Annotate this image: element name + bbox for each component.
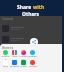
staticText: Share to: [2, 46, 14, 50]
staticText: with: [33, 4, 45, 11]
button[interactable]: Sheets: [19, 60, 28, 68]
button[interactable]: Instagram: [19, 50, 28, 61]
staticText: Instagram: [19, 55, 28, 61]
staticText: Facebook: [10, 65, 19, 68]
button[interactable]: Drive: [1, 60, 10, 68]
button[interactable]: Gmail: [10, 50, 19, 58]
staticText: Gmail: [12, 55, 18, 58]
button[interactable]: Chrome: [28, 60, 37, 68]
staticText: Contacts: [2, 17, 14, 21]
button[interactable]: WhatsApp: [1, 50, 10, 61]
staticText: WhatsApp: [1, 55, 10, 61]
staticText: Share: [17, 4, 33, 11]
staticText: Telegram: [28, 55, 37, 58]
button[interactable]: Share: [30, 38, 38, 46]
staticText: Sheets: [20, 65, 27, 68]
button[interactable]: Telegram: [28, 50, 37, 58]
staticText: Others: [22, 11, 40, 18]
staticText: Chrome: [29, 65, 37, 68]
button[interactable]: Facebook: [10, 60, 19, 68]
staticText: Drive: [3, 65, 8, 68]
